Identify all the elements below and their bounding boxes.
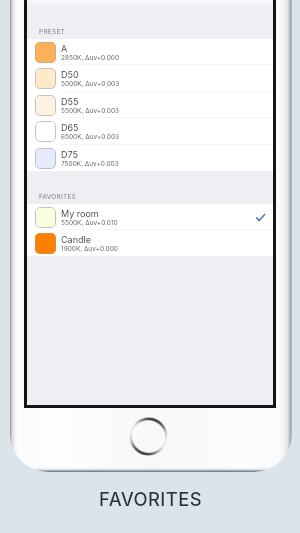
button[interactable]: D65	[27, 118, 273, 145]
staticText: FAVORITES	[39, 193, 76, 201]
button[interactable]: My room	[27, 204, 273, 230]
staticText: Candle	[61, 234, 91, 245]
staticText: D75	[61, 149, 78, 160]
staticText: 2850K, Δuv+0.000	[61, 54, 120, 62]
button[interactable]: Home	[129, 417, 168, 456]
button[interactable]: D75	[27, 145, 273, 171]
staticText: 5500K, Δuv+0.003	[61, 107, 119, 115]
staticText: 1900K, Δuv+0.000	[61, 245, 118, 253]
other: Selected	[256, 213, 265, 222]
staticText: My room	[61, 208, 99, 219]
staticText: 5500K, Δuv+0.010	[61, 219, 118, 227]
staticText: D50	[61, 69, 79, 80]
staticText: 5000K, Δuv+0.003	[61, 80, 120, 88]
staticText: 6500K, Δuv+0.003	[61, 133, 120, 141]
staticText: D55	[61, 96, 79, 107]
button[interactable]: A	[27, 39, 273, 65]
staticText: D65	[61, 122, 79, 133]
staticText: FAVORITES	[99, 488, 202, 510]
button[interactable]: D50	[27, 65, 273, 92]
button[interactable]: D55	[27, 92, 273, 118]
staticText: A	[61, 43, 68, 54]
staticText: 7500K, Δuv+0.003	[61, 160, 119, 168]
button[interactable]: Candle	[27, 230, 273, 256]
staticText: PRESET	[39, 28, 66, 36]
